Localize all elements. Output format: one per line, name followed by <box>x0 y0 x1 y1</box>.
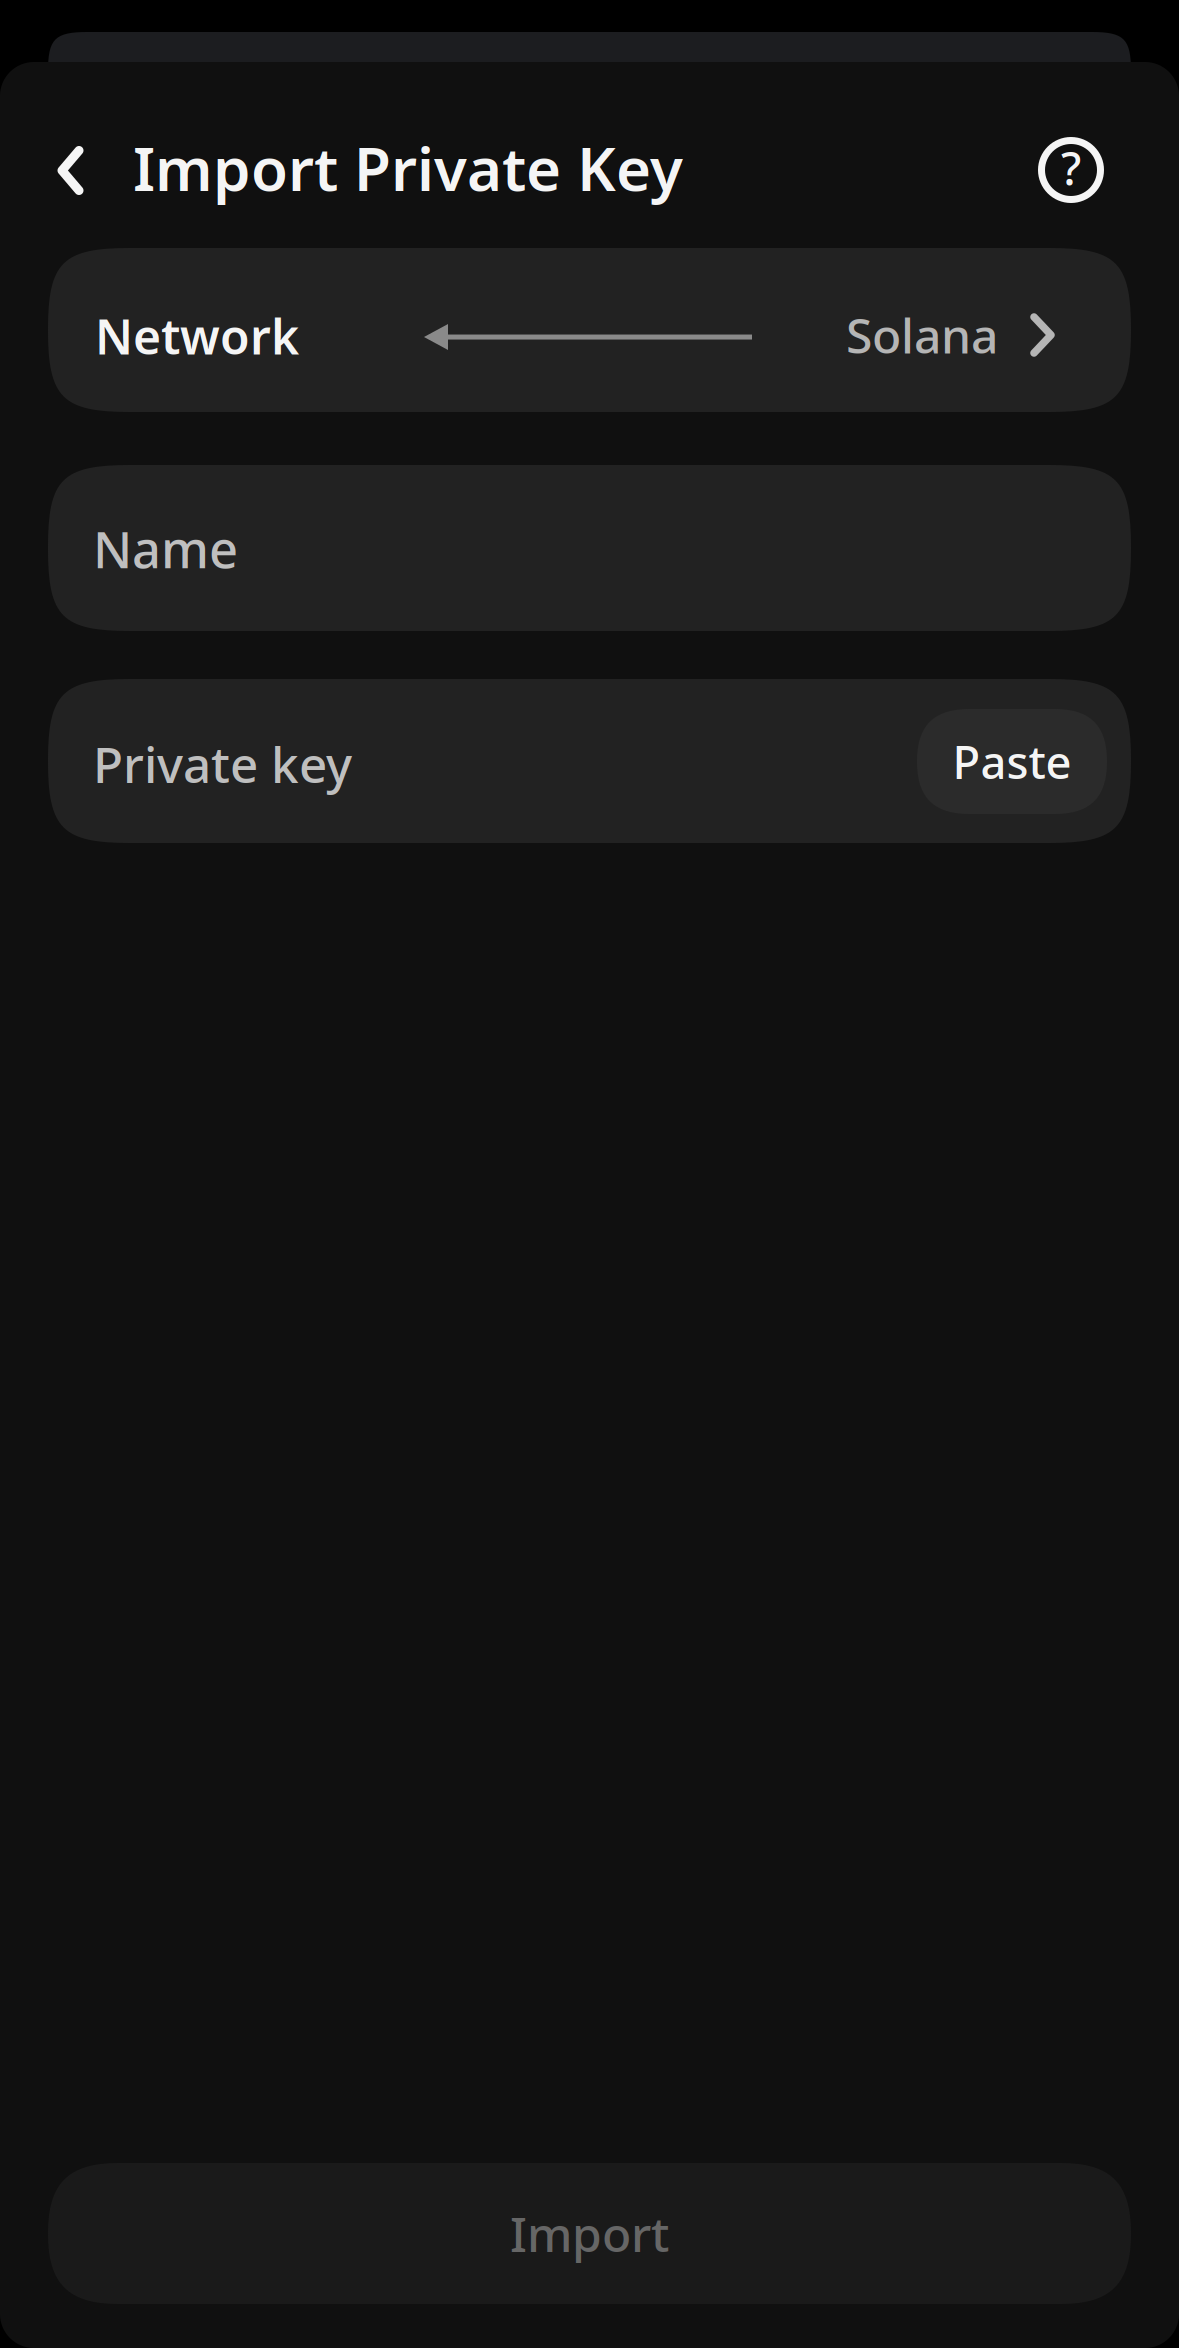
button[interactable]: Help <box>1005 120 1137 220</box>
staticText: Paste <box>952 731 1071 792</box>
button[interactable]: Import <box>48 2163 1131 2304</box>
button[interactable]: Paste <box>917 709 1107 814</box>
button[interactable]: Network <box>48 248 1131 412</box>
staticText: Import Private Key <box>133 128 683 208</box>
button[interactable]: Name <box>48 465 1131 631</box>
staticText: Import <box>510 2202 669 2265</box>
staticText: ? <box>1061 138 1081 198</box>
staticText: Private key <box>93 731 352 796</box>
staticText: Network <box>95 304 299 368</box>
staticText: Name <box>93 515 238 582</box>
button[interactable]: Back <box>33 121 109 221</box>
staticText: Solana <box>846 303 998 367</box>
